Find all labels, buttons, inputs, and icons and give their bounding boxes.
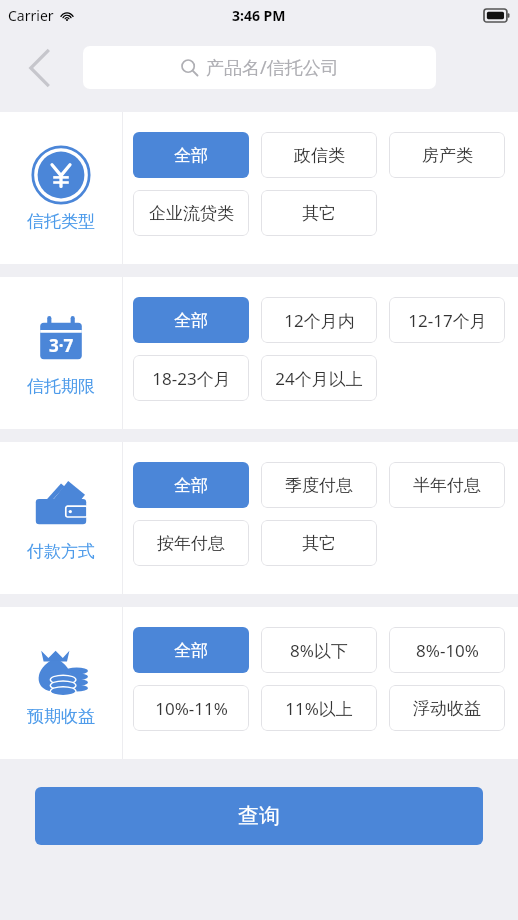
button[interactable]: 其它: [261, 520, 377, 566]
button[interactable]: 产品名/信托公司: [83, 46, 436, 89]
staticText: 按年付息: [157, 533, 225, 554]
button[interactable]: 查询: [35, 787, 483, 845]
staticText: 全部: [174, 145, 208, 166]
button[interactable]: 11%以上: [261, 685, 377, 731]
button[interactable]: 全部: [133, 462, 249, 508]
button[interactable]: 8%-10%: [389, 627, 505, 673]
staticText: 8%以下: [290, 639, 348, 662]
staticText: 全部: [174, 310, 208, 331]
staticText: Carrier: [8, 6, 54, 25]
button[interactable]: 10%-11%: [133, 685, 249, 731]
button[interactable]: 企业流贷类: [133, 190, 249, 236]
staticText: 12个月内: [284, 309, 355, 332]
staticText: 全部: [174, 640, 208, 661]
button[interactable]: 房产类: [389, 132, 505, 178]
staticText: 产品名/信托公司: [206, 55, 339, 80]
button[interactable]: Back: [18, 46, 62, 90]
button[interactable]: 12-17个月: [389, 297, 505, 343]
staticText: 信托类型: [27, 211, 95, 232]
button[interactable]: 18-23个月: [133, 355, 249, 401]
staticText: 信托期限: [27, 376, 95, 397]
button[interactable]: 8%以下: [261, 627, 377, 673]
staticText: 付款方式: [27, 541, 95, 562]
button[interactable]: 12个月内: [261, 297, 377, 343]
staticText: 政信类: [294, 145, 345, 166]
staticText: 预期收益: [27, 706, 95, 727]
button[interactable]: 其它: [261, 190, 377, 236]
button[interactable]: 全部: [133, 132, 249, 178]
staticText: 其它: [302, 533, 336, 554]
button[interactable]: 半年付息: [389, 462, 505, 508]
staticText: 24个月以上: [275, 367, 363, 390]
staticText: 半年付息: [413, 475, 481, 496]
button[interactable]: 24个月以上: [261, 355, 377, 401]
staticText: 全部: [174, 475, 208, 496]
staticText: 房产类: [422, 145, 473, 166]
staticText: 18-23个月: [152, 367, 231, 390]
button[interactable]: 按年付息: [133, 520, 249, 566]
button[interactable]: 季度付息: [261, 462, 377, 508]
staticText: 3:46 PM: [232, 6, 286, 25]
staticText: 季度付息: [285, 475, 353, 496]
staticText: 其它: [302, 203, 336, 224]
staticText: 企业流贷类: [149, 203, 234, 224]
staticText: 11%以上: [285, 697, 353, 720]
staticText: 3·7: [49, 334, 74, 357]
staticText: 查询: [238, 803, 280, 829]
staticText: 浮动收益: [413, 698, 481, 719]
button[interactable]: 浮动收益: [389, 685, 505, 731]
staticText: 8%-10%: [416, 639, 479, 662]
staticText: 12-17个月: [408, 309, 487, 332]
button[interactable]: 政信类: [261, 132, 377, 178]
staticText: 10%-11%: [155, 697, 228, 720]
button[interactable]: 全部: [133, 297, 249, 343]
button[interactable]: 全部: [133, 627, 249, 673]
